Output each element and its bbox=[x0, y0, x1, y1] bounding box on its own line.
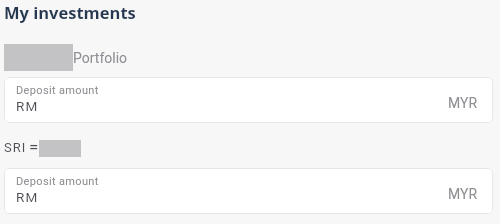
staticText: MYR bbox=[448, 95, 478, 111]
staticText: RM bbox=[16, 189, 39, 205]
staticText: Deposit amount bbox=[16, 175, 99, 188]
staticText: Portfolio bbox=[73, 50, 128, 66]
button[interactable]: Deposit amount, RM, MYR bbox=[4, 77, 493, 123]
staticText: RM bbox=[16, 98, 39, 114]
staticText: Deposit amount bbox=[16, 84, 99, 97]
staticText: MYR bbox=[448, 186, 478, 202]
staticText: My investments bbox=[4, 1, 136, 23]
staticText: = bbox=[29, 137, 39, 157]
staticText: SRI bbox=[4, 140, 27, 155]
button[interactable]: Deposit amount, RM, MYR bbox=[4, 168, 493, 214]
